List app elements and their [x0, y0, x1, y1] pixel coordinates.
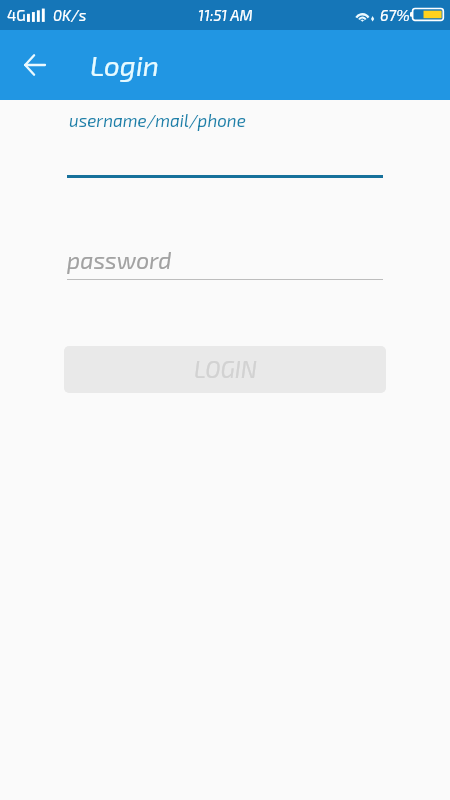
staticText: 67%	[380, 6, 410, 24]
staticText: 11:51 AM	[198, 6, 253, 24]
staticText: username/mail/phone	[69, 110, 246, 130]
staticText: password	[67, 246, 172, 274]
button[interactable]: Back	[10, 40, 60, 90]
button[interactable]: password	[67, 244, 383, 280]
button[interactable]: username/mail/phone	[67, 108, 383, 178]
staticText: 4G	[7, 6, 26, 24]
staticText: LOGIN	[194, 355, 257, 383]
button[interactable]: LOGIN	[64, 346, 386, 393]
staticText: 0K/s	[53, 6, 87, 24]
staticText: Login	[90, 48, 160, 82]
